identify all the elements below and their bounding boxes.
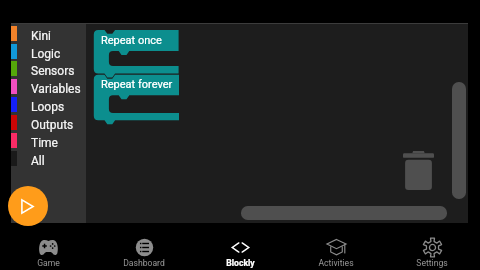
staticText: Time: [31, 136, 58, 150]
button[interactable]: Activities: [288, 223, 384, 270]
staticText: Game: [37, 258, 60, 268]
button[interactable]: All: [11, 151, 86, 169]
staticText: Logic: [31, 47, 61, 61]
button[interactable]: Outputs: [11, 115, 86, 133]
button[interactable]: Logic: [11, 44, 86, 62]
staticText: Activities: [318, 258, 354, 268]
staticText: Kini: [31, 29, 51, 43]
staticText: Blockly: [226, 258, 255, 268]
staticText: Repeat once: [101, 34, 162, 47]
button[interactable]: Blockly: [192, 223, 288, 270]
staticText: Settings: [416, 258, 448, 268]
staticText: Sensors: [31, 64, 75, 78]
staticText: Loops: [31, 100, 65, 114]
button[interactable]: Run: [8, 186, 48, 226]
button[interactable]: Settings: [384, 223, 480, 270]
button[interactable]: Variables: [11, 79, 86, 97]
staticText: All: [31, 154, 45, 168]
button[interactable]: Dashboard: [96, 223, 192, 270]
button[interactable]: Time: [11, 133, 86, 151]
staticText: Variables: [31, 82, 81, 96]
button[interactable]: Kini: [11, 26, 86, 44]
button[interactable]: Sensors: [11, 61, 86, 79]
button[interactable]: Loops: [11, 97, 86, 115]
staticText: Dashboard: [123, 258, 165, 268]
staticText: Outputs: [31, 118, 74, 132]
staticText: Repeat forever: [101, 78, 173, 91]
button[interactable]: Delete: [403, 151, 434, 190]
button[interactable]: Game: [0, 223, 96, 270]
